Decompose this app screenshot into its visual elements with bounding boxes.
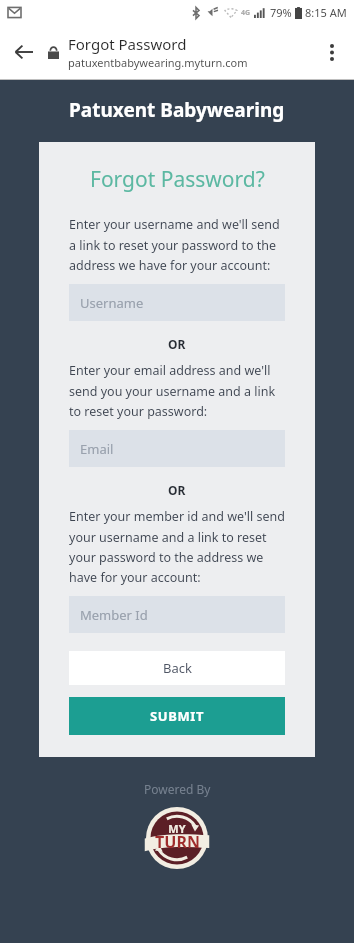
staticText: Email [80, 440, 114, 458]
staticText: 79% [270, 5, 292, 20]
staticText: MY [168, 821, 186, 836]
button[interactable]: Member Id [69, 596, 285, 633]
staticText: OR [168, 336, 186, 352]
staticText: Member Id [80, 606, 148, 624]
staticText: TURN [155, 831, 200, 853]
staticText: Back [163, 659, 192, 677]
staticText: Username [80, 294, 144, 312]
other: MyTurn logo [146, 807, 208, 869]
staticText: SUBMIT [150, 707, 205, 725]
staticText: Enter your email address and we'll send … [69, 362, 285, 419]
other: Secure connection [48, 46, 59, 59]
staticText: Enter your member id and we'll send your… [69, 508, 285, 585]
staticText: Patuxent Babywearing [69, 97, 285, 123]
button[interactable]: More options [310, 24, 354, 80]
staticText: 8:15 AM [305, 5, 347, 20]
button[interactable]: Back [0, 24, 48, 80]
staticText: Powered By [144, 781, 211, 797]
staticText: Forgot Password? [90, 165, 265, 194]
staticText: Enter your username and we'll send a lin… [69, 216, 285, 273]
staticText: Forgot Password [68, 34, 187, 54]
button[interactable]: Username [69, 284, 285, 321]
staticText: 4G [241, 8, 251, 18]
button[interactable]: Back [69, 651, 285, 685]
button[interactable]: SUBMIT [69, 697, 285, 735]
button[interactable]: Email [69, 430, 285, 467]
staticText: patuxentbabywearing.myturn.com [68, 55, 248, 70]
staticText: OR [168, 482, 186, 498]
